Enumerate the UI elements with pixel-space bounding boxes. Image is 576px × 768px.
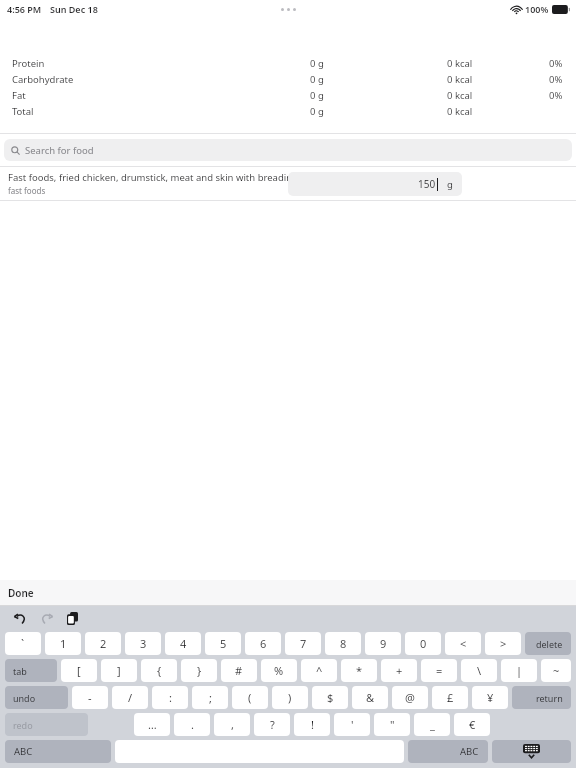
button[interactable]: ' [334, 713, 370, 736]
button[interactable]: : [152, 686, 188, 709]
staticText: 2 [100, 636, 107, 651]
staticText: 9 [380, 636, 387, 651]
button[interactable]: Redo [37, 609, 55, 627]
button[interactable]: , [214, 713, 250, 736]
staticText: 150 [418, 177, 436, 191]
button[interactable]: } [181, 659, 217, 682]
staticText: ¥ [487, 690, 494, 705]
staticText: ( [248, 690, 252, 705]
staticText: ~ [553, 663, 560, 678]
staticText: " [390, 717, 395, 732]
staticText: … [148, 717, 157, 732]
button[interactable]: < [445, 632, 481, 655]
button[interactable]: 3 [125, 632, 161, 655]
button[interactable]: 9 [365, 632, 401, 655]
button[interactable]: ; [192, 686, 228, 709]
button[interactable]: Fat [0, 87, 576, 103]
button[interactable]: { [141, 659, 177, 682]
button[interactable]: Done [8, 586, 34, 600]
button[interactable]: & [352, 686, 388, 709]
button[interactable]: ~ [541, 659, 571, 682]
staticText: | [516, 663, 523, 678]
staticText: 0 g [310, 57, 324, 70]
button[interactable]: Protein [0, 55, 576, 71]
button[interactable]: 2 [85, 632, 121, 655]
button[interactable]: > [485, 632, 521, 655]
staticText: undo [13, 692, 36, 704]
staticText: ] [117, 663, 121, 678]
button[interactable]: ABC [5, 740, 111, 763]
button[interactable]: [ [61, 659, 97, 682]
button[interactable]: " [374, 713, 410, 736]
staticText: + [396, 663, 403, 678]
staticText: ! [311, 717, 314, 732]
button[interactable]: $ [312, 686, 348, 709]
staticText: 0 g [310, 73, 324, 86]
button[interactable]: ( [232, 686, 268, 709]
button[interactable]: 0 [405, 632, 441, 655]
button[interactable]: 7 [285, 632, 321, 655]
button[interactable]: Fast foods, fried chicken, drumstick, me… [0, 167, 576, 200]
button[interactable]: return [512, 686, 571, 709]
button[interactable]: # [221, 659, 257, 682]
button[interactable]: 4 [165, 632, 201, 655]
staticText: Fast foods, fried chicken, drumstick, me… [8, 171, 298, 184]
staticText: & [366, 690, 375, 705]
button[interactable]: 150 [288, 172, 462, 196]
button[interactable]: ] [101, 659, 137, 682]
staticText: 100% [525, 3, 549, 15]
button[interactable]: € [454, 713, 490, 736]
button[interactable]: Search for food [4, 139, 572, 161]
button[interactable]: undo [5, 686, 68, 709]
staticText: ; [209, 690, 212, 705]
button[interactable]: ^ [301, 659, 337, 682]
button[interactable]: \ [461, 659, 497, 682]
button[interactable]: tab [5, 659, 57, 682]
button[interactable]: Total [0, 103, 576, 119]
button[interactable]: redo [5, 713, 88, 736]
staticText: Search for food [25, 144, 94, 157]
button[interactable]: 6 [245, 632, 281, 655]
button[interactable]: … [134, 713, 170, 736]
staticText: Total [12, 105, 34, 118]
button[interactable]: 8 [325, 632, 361, 655]
button[interactable]: _ [414, 713, 450, 736]
staticText: 0% [549, 73, 563, 86]
button[interactable]: ) [272, 686, 308, 709]
staticText: < [460, 636, 467, 651]
button[interactable]: ! [294, 713, 330, 736]
button[interactable]: delete [525, 632, 571, 655]
staticText: $ [327, 690, 334, 705]
staticText: @ [405, 690, 415, 705]
button[interactable]: = [421, 659, 457, 682]
button[interactable]: 5 [205, 632, 241, 655]
button[interactable]: . [174, 713, 210, 736]
button[interactable]: Carbohydrate [0, 71, 576, 87]
staticText: \ [477, 663, 482, 678]
button[interactable]: | [501, 659, 537, 682]
button[interactable]: + [381, 659, 417, 682]
staticText: 4:56 PM [7, 3, 42, 15]
staticText: > [500, 636, 507, 651]
button[interactable]: @ [392, 686, 428, 709]
staticText: € [469, 717, 476, 732]
button[interactable]: / [112, 686, 148, 709]
button[interactable]: ` [5, 632, 41, 655]
button[interactable]: £ [432, 686, 468, 709]
button[interactable]: ¥ [472, 686, 508, 709]
button[interactable]: Hide keyboard [492, 740, 571, 763]
button[interactable]: * [341, 659, 377, 682]
button[interactable]: - [72, 686, 108, 709]
button[interactable]: ABC [408, 740, 488, 763]
staticText: [ [77, 663, 81, 678]
staticText: / [128, 690, 133, 705]
button[interactable]: 1 [45, 632, 81, 655]
staticText: _ [430, 717, 435, 732]
other: Hide keyboard [492, 740, 571, 763]
button[interactable]: % [261, 659, 297, 682]
button[interactable]: ? [254, 713, 290, 736]
staticText: 8 [340, 636, 347, 651]
button[interactable]: Undo [11, 609, 29, 627]
button[interactable]: Paste [63, 609, 81, 627]
